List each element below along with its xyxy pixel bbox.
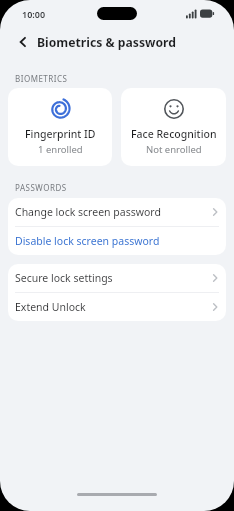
staticText: Biometrics & password xyxy=(37,34,176,51)
button[interactable]: Fingerprint ID xyxy=(8,88,112,166)
button[interactable]: Secure lock settings xyxy=(8,264,226,292)
staticText: PASSWORDS xyxy=(15,182,67,193)
staticText: Change lock screen password xyxy=(15,205,161,219)
staticText: Not enrolled xyxy=(146,143,202,156)
button[interactable]: Face Recognition xyxy=(121,88,226,166)
staticText: Fingerprint ID xyxy=(25,127,96,141)
staticText: Secure lock settings xyxy=(15,271,113,285)
staticText: Extend Unlock xyxy=(15,300,86,314)
button[interactable]: Biometrics & password xyxy=(0,28,234,56)
staticText: BIOMETRICS xyxy=(15,73,68,84)
staticText: Disable lock screen password xyxy=(15,234,160,248)
staticText: 1 enrolled xyxy=(38,143,83,156)
staticText: Face Recognition xyxy=(131,127,217,141)
button[interactable]: Change lock screen password xyxy=(8,198,226,226)
button[interactable]: Disable lock screen password xyxy=(8,227,226,255)
staticText: 10:00 xyxy=(22,8,46,20)
button[interactable]: Extend Unlock xyxy=(8,293,226,321)
